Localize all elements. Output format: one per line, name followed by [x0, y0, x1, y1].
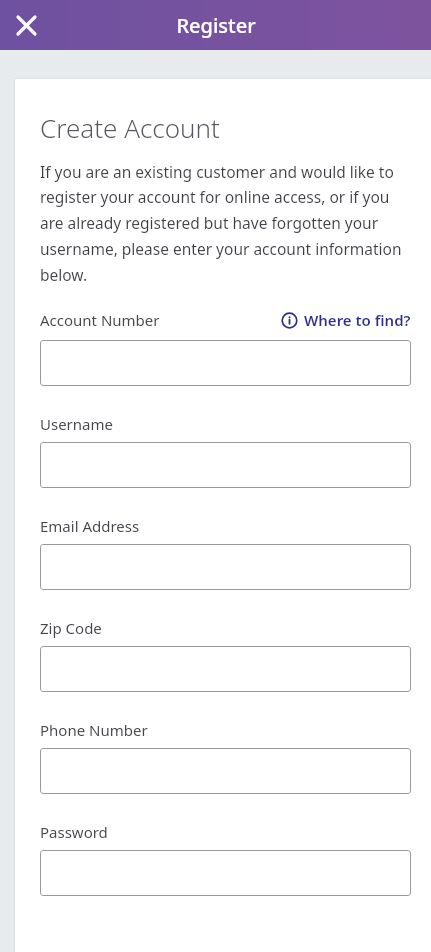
staticText: If you are an existing customer and woul… — [40, 161, 411, 286]
staticText: Username — [40, 414, 113, 434]
button[interactable] — [40, 850, 411, 896]
staticText: Where to find? — [304, 310, 411, 330]
staticText: Account Number — [40, 310, 160, 330]
staticText: Password — [40, 822, 108, 842]
button[interactable] — [40, 544, 411, 590]
button[interactable]: Where to find? — [281, 308, 411, 332]
staticText: Email Address — [40, 516, 140, 536]
staticText: Register — [176, 12, 256, 39]
staticText: Zip Code — [40, 618, 102, 638]
button[interactable] — [40, 442, 411, 488]
button[interactable]: Close — [4, 3, 48, 47]
button[interactable] — [40, 340, 411, 386]
button[interactable] — [40, 748, 411, 794]
staticText: Phone Number — [40, 720, 148, 740]
staticText: Create Account — [40, 110, 220, 145]
button[interactable] — [40, 646, 411, 692]
